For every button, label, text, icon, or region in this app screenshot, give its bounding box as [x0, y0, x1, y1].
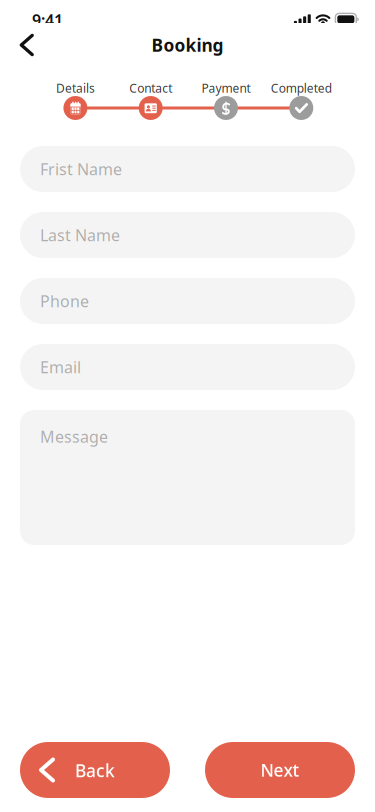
staticText: Email	[40, 356, 81, 378]
button[interactable]: Frist Name	[20, 146, 355, 192]
staticText: 9:41	[32, 9, 63, 31]
button[interactable]: Phone	[20, 278, 355, 324]
button[interactable]: Message	[20, 410, 355, 545]
staticText: Message	[40, 426, 108, 447]
staticText: Completed	[271, 80, 332, 96]
button[interactable]: Next	[205, 742, 355, 798]
staticText: Details	[56, 80, 95, 96]
button[interactable]: Last Name	[20, 212, 355, 258]
staticText: Payment	[201, 80, 250, 96]
staticText: Booking	[151, 33, 223, 56]
button[interactable]: Email	[20, 344, 355, 390]
staticText: Phone	[40, 290, 89, 312]
staticText: Contact	[129, 80, 172, 96]
staticText: Frist Name	[40, 158, 122, 180]
staticText: Last Name	[40, 224, 120, 246]
staticText: Next	[260, 758, 299, 781]
button[interactable]: Back	[0, 23, 46, 67]
staticText: Back	[75, 759, 115, 782]
button[interactable]: Back	[20, 742, 170, 798]
